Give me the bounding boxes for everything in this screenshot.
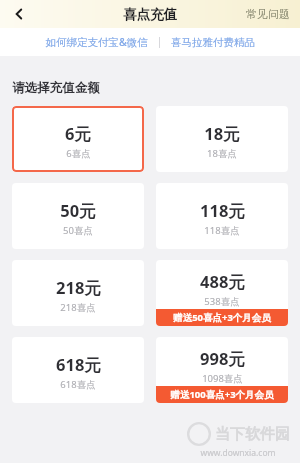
button[interactable]: 6元 [12,106,144,172]
button[interactable]: 218元 [12,260,144,326]
staticText: www.downxia.com [200,447,276,459]
staticText: 赠送100喜点+3个月会员 [170,388,274,401]
button[interactable]: 如何绑定支付宝&微信 [41,31,152,53]
button[interactable]: 488元 [156,260,288,326]
staticText: 如何绑定支付宝&微信 [45,35,148,49]
button[interactable]: 喜马拉雅付费精品 [167,32,259,53]
staticText: 当下软件园 [215,425,290,444]
button[interactable]: 50元 [12,183,144,249]
button[interactable]: Back [0,0,38,28]
staticText: 18喜点 [207,147,237,160]
staticText: 赠送50喜点+3个月会员 [173,311,271,324]
button[interactable]: 常见问题 [236,0,300,28]
staticText: 50元 [60,199,96,222]
staticText: 218喜点 [60,301,96,314]
staticText: 6喜点 [66,147,91,160]
staticText: 常见问题 [246,7,290,21]
staticText: 喜马拉雅付费精品 [171,36,255,49]
button[interactable]: 618元 [12,337,144,403]
staticText: 118喜点 [204,224,240,237]
staticText: 6元 [65,122,91,145]
staticText: 喜点充值 [123,6,177,23]
staticText: 118元 [200,199,245,222]
staticText: 998元 [200,347,245,370]
staticText: 218元 [56,276,101,299]
staticText: 618喜点 [60,378,96,391]
staticText: 请选择充值金额 [12,80,100,96]
staticText: 50喜点 [63,224,93,237]
button[interactable]: 118元 [156,183,288,249]
staticText: 538喜点 [204,295,240,308]
button[interactable]: 998元 [156,337,288,403]
button[interactable]: 18元 [156,106,288,172]
staticText: 18元 [204,122,240,145]
staticText: 618元 [56,353,101,376]
staticText: 1098喜点 [202,372,243,385]
staticText: 488元 [200,270,245,293]
